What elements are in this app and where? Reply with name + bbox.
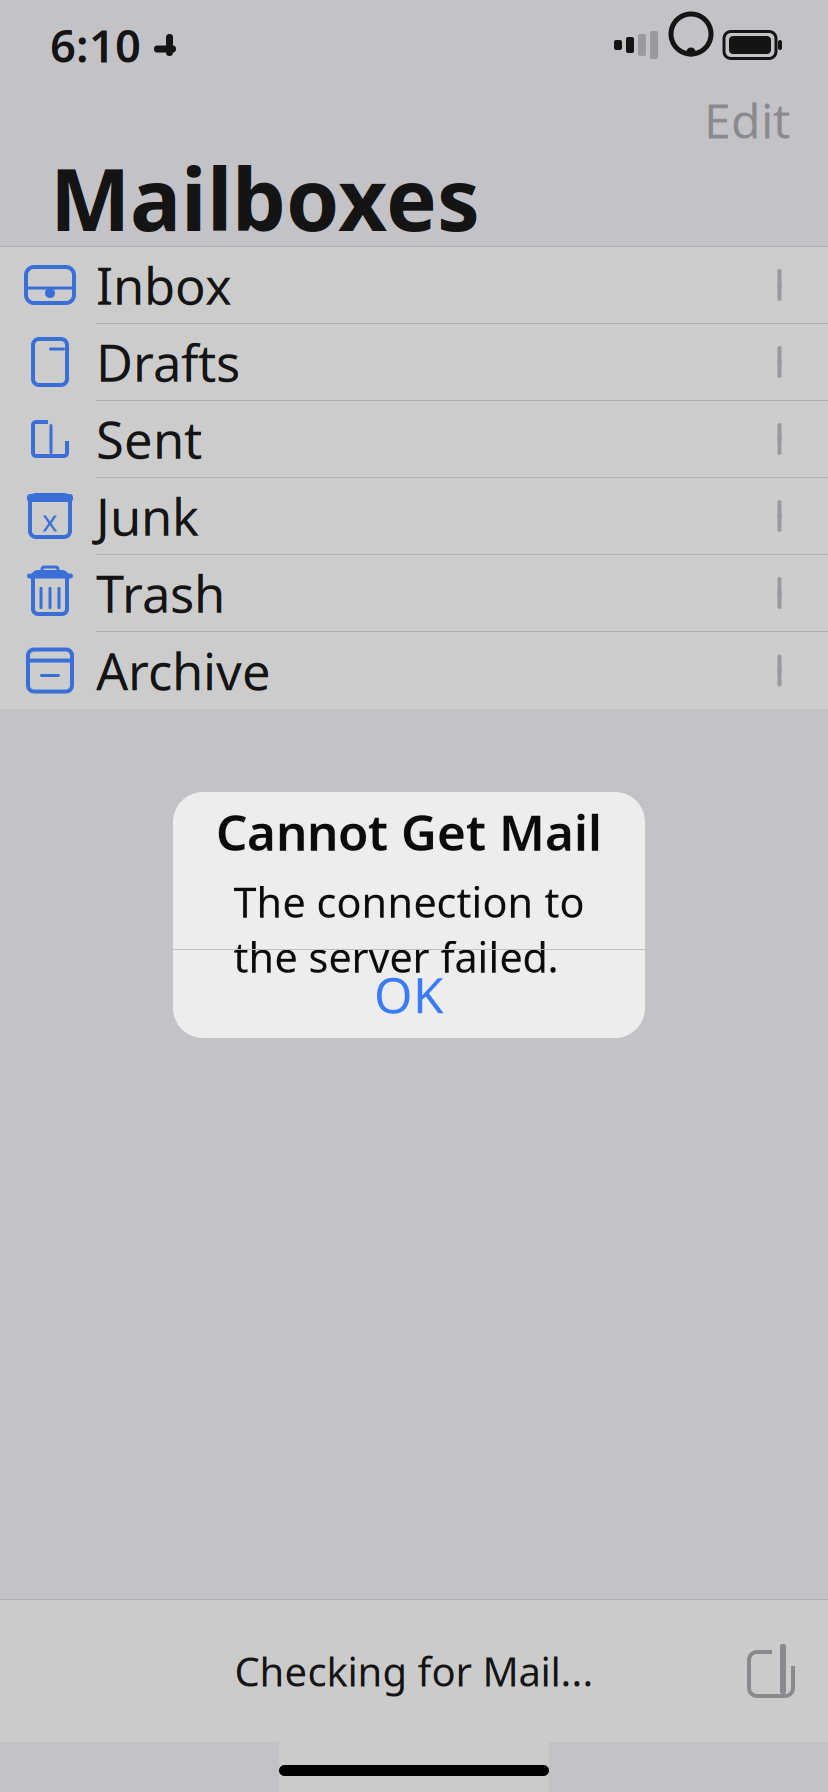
staticText: The connection to the server failed. [233, 874, 584, 984]
button[interactable]: Compose [738, 1635, 810, 1707]
button[interactable]: Inbox [0, 247, 828, 324]
button[interactable]: Sent [0, 401, 828, 478]
staticText: Archive [96, 637, 271, 704]
staticText: Junk [96, 482, 199, 550]
staticText: OK [374, 961, 444, 1027]
staticText: Trash [96, 559, 225, 627]
staticText: Inbox [96, 251, 232, 319]
button[interactable]: OK [173, 950, 645, 1038]
staticText: Sent [96, 405, 202, 473]
button[interactable]: x [0, 478, 828, 555]
button[interactable]: Archive [0, 632, 828, 709]
staticText: 6:10 [50, 15, 141, 75]
staticText: Edit [704, 88, 790, 152]
staticText: Cannot Get Mail [216, 799, 602, 864]
staticText: Drafts [96, 328, 240, 396]
staticText: x [42, 500, 58, 539]
button[interactable]: Edit [694, 80, 800, 160]
staticText: Mailboxes [50, 141, 480, 255]
staticText: Checking for Mail... [234, 1644, 593, 1697]
button[interactable]: Trash [0, 555, 828, 632]
button[interactable]: Drafts [0, 324, 828, 401]
